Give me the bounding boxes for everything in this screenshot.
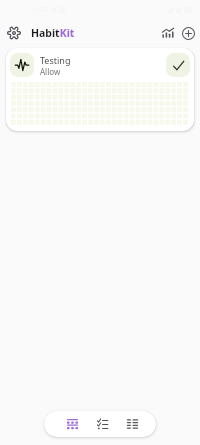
button[interactable]: List view xyxy=(123,411,141,437)
button[interactable]: Statistics xyxy=(158,23,178,43)
button[interactable]: Add habit xyxy=(178,23,198,43)
button[interactable]: Testing xyxy=(6,48,194,131)
button[interactable]: Settings xyxy=(5,24,23,42)
button[interactable]: Mark habit complete xyxy=(166,53,190,77)
staticText: Allow xyxy=(40,66,61,77)
button[interactable]: Checklist view xyxy=(93,411,111,437)
staticText: HabitKit xyxy=(31,26,75,40)
button[interactable]: Grid view xyxy=(63,411,81,437)
staticText: Testing xyxy=(40,54,71,66)
